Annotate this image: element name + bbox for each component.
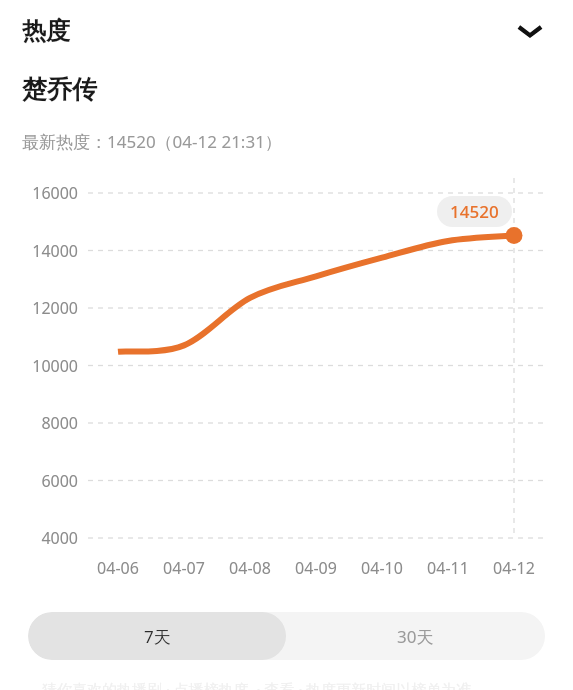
staticText: 14520 [450, 200, 499, 223]
staticText: 04-12 [478, 557, 550, 579]
staticText: 楚乔传 [22, 74, 97, 105]
staticText: 8000 [10, 412, 78, 434]
staticText: 6000 [10, 470, 78, 492]
staticText: 30天 [397, 625, 434, 648]
staticText: 04-11 [412, 557, 484, 579]
staticText: 10000 [10, 355, 78, 377]
staticText: 04-10 [346, 557, 418, 579]
button[interactable]: 30天 [286, 612, 545, 660]
staticText: 最新热度：14520（04-12 21:31） [22, 130, 282, 153]
staticText: 04-07 [148, 557, 220, 579]
staticText: 12000 [10, 297, 78, 319]
staticText: 热度 [22, 16, 70, 46]
staticText: 猜你喜欢的热播剧 · 点播榜热度 · 查看 · 热度更新时间以榜单为准 [42, 679, 573, 690]
staticText: 04-08 [214, 557, 286, 579]
button[interactable]: Collapse [508, 9, 552, 53]
staticText: 7天 [144, 625, 171, 648]
button[interactable]: 7天 [28, 612, 286, 660]
staticText: 04-06 [82, 557, 154, 579]
staticText: 14000 [10, 240, 78, 262]
staticText: 4000 [10, 527, 78, 549]
staticText: 16000 [10, 182, 78, 204]
staticText: 04-09 [280, 557, 352, 579]
